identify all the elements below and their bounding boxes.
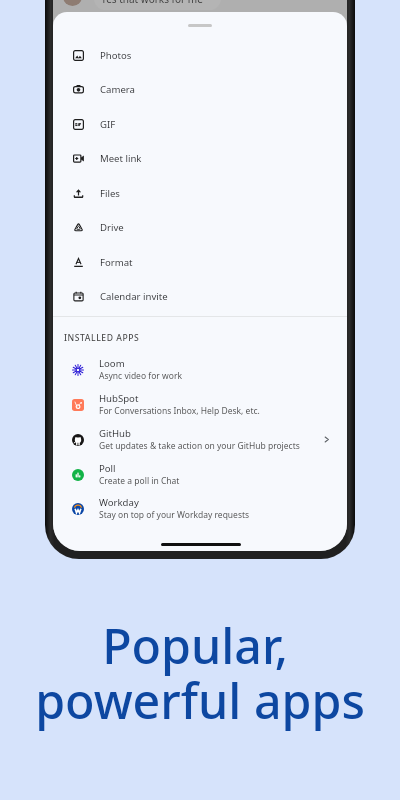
button[interactable]: Files (53, 176, 347, 211)
button[interactable]: Calendar invite (53, 279, 347, 314)
button[interactable]: Poll (53, 457, 347, 492)
staticText: Camera (100, 83, 135, 96)
staticText: GitHub (99, 427, 131, 440)
button[interactable]: Camera (53, 72, 347, 107)
staticText: Files (100, 187, 120, 200)
button[interactable]: Loom (53, 352, 347, 387)
button[interactable]: Meet link (53, 141, 347, 176)
staticText: Create a poll in Chat (99, 475, 180, 487)
staticText: INSTALLED APPS (64, 332, 140, 344)
staticText: Yes that works for me (101, 0, 203, 6)
staticText: Calendar invite (100, 290, 168, 303)
staticText: GIF (100, 118, 116, 131)
staticText: Async video for work (99, 370, 182, 382)
staticText: For Conversations Inbox, Help Desk, etc. (99, 405, 260, 417)
button[interactable]: Format (53, 245, 347, 280)
button[interactable]: Drive (53, 210, 347, 245)
staticText: Poll (99, 462, 116, 475)
button[interactable]: HubSpot (53, 387, 347, 422)
staticText: Get updates & take action on your GitHub… (99, 440, 300, 452)
button[interactable]: Workday (53, 491, 347, 526)
staticText: Drive (100, 221, 124, 234)
staticText: powerful apps (35, 667, 365, 733)
staticText: Stay on top of your Workday requests (99, 509, 250, 521)
staticText: Photos (100, 49, 132, 62)
staticText: Workday (99, 496, 139, 509)
button[interactable]: Photos (53, 38, 347, 73)
staticText: Popular, (102, 612, 288, 678)
staticText: Format (100, 256, 133, 269)
staticText: Loom (99, 357, 125, 370)
staticText: HubSpot (99, 392, 139, 405)
button[interactable]: GitHub (53, 422, 347, 457)
button[interactable]: GIF (53, 107, 347, 142)
staticText: Meet link (100, 152, 142, 165)
